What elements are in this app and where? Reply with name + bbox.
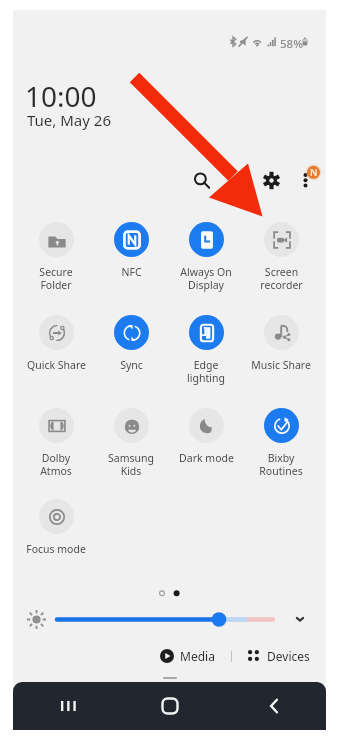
button[interactable]: Screen recorder (243, 222, 319, 292)
staticText: 58% (280, 36, 303, 52)
button[interactable]: Music Share (243, 315, 319, 372)
staticText: Screen recorder (260, 265, 303, 292)
button[interactable]: Dolby Atmos (18, 408, 94, 478)
button[interactable]: Sync (93, 315, 169, 372)
button[interactable]: Home (118, 682, 222, 730)
button[interactable]: Media (156, 644, 219, 668)
button[interactable]: Focus mode (18, 499, 94, 556)
button[interactable]: Recents (13, 682, 118, 730)
button[interactable]: Search (180, 165, 216, 201)
staticText: Sync (120, 358, 143, 372)
staticText: NFC (121, 265, 142, 279)
button[interactable]: NFC (93, 222, 169, 279)
staticText: Dolby Atmos (40, 451, 72, 478)
staticText: Always On Display (180, 265, 232, 292)
button[interactable]: Devices (244, 644, 314, 668)
staticText: Dark mode (179, 451, 234, 465)
button[interactable]: Settings (254, 163, 290, 199)
button[interactable]: More options (295, 165, 325, 197)
button[interactable]: Samsung Kids (93, 408, 169, 478)
button[interactable]: Always On Display (168, 222, 244, 292)
staticText: Bixby Routines (259, 451, 303, 478)
staticText: Media (180, 648, 215, 664)
button[interactable]: Dark mode (168, 408, 244, 465)
button[interactable]: Quick Share (18, 315, 94, 372)
staticText: 10:00 (25, 77, 97, 115)
staticText: Tue, May 26 (27, 110, 111, 130)
staticText: Samsung Kids (108, 451, 154, 478)
staticText: Edge lighting (187, 358, 225, 385)
button[interactable]: Bixby Routines (243, 408, 319, 478)
staticText: N (310, 166, 318, 179)
staticText: Devices (267, 648, 310, 664)
button[interactable]: Secure Folder (18, 222, 94, 292)
button[interactable]: Back (222, 682, 326, 730)
staticText: Focus mode (26, 542, 86, 556)
staticText: Quick Share (27, 358, 86, 372)
staticText: Secure Folder (39, 265, 73, 292)
button[interactable]: Edge lighting (168, 315, 244, 385)
staticText: Music Share (251, 358, 311, 372)
button[interactable]: Expand quick settings (288, 607, 312, 631)
